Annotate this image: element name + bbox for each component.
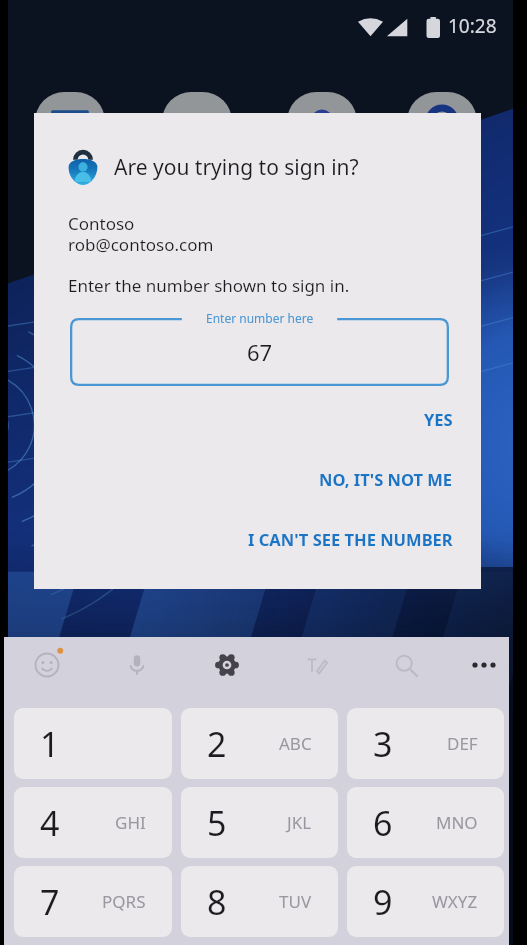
staticText: PQRS	[102, 890, 146, 913]
button[interactable]: 2	[181, 708, 338, 779]
button[interactable]: 6	[347, 787, 504, 858]
button[interactable]: I CAN'T SEE THE NUMBER	[244, 525, 457, 553]
staticText: YES	[424, 408, 453, 430]
button[interactable]: Handwriting	[295, 643, 339, 687]
staticText: 10:28	[448, 13, 497, 39]
button[interactable]: 7	[14, 866, 172, 937]
staticText: Enter the number shown to sign in.	[68, 274, 350, 297]
staticText: 8	[207, 879, 227, 925]
staticText: 1	[40, 721, 60, 767]
button[interactable]: Settings	[205, 643, 249, 687]
staticText: 7	[40, 879, 60, 925]
staticText: 67	[247, 337, 273, 367]
staticText: Enter number here	[206, 310, 314, 326]
staticText: 4	[40, 800, 60, 846]
staticText: 2	[207, 721, 227, 767]
staticText: MNO	[436, 811, 478, 834]
staticText: Are you trying to sign in?	[114, 153, 359, 182]
staticText: TUV	[279, 890, 312, 913]
staticText: WXYZ	[432, 890, 478, 913]
button[interactable]: 8	[181, 866, 338, 937]
staticText: NO, IT'S NOT ME	[319, 468, 453, 490]
staticText: I CAN'T SEE THE NUMBER	[248, 528, 453, 550]
staticText: rob@contoso.com	[68, 233, 214, 256]
staticText: 3	[373, 721, 393, 767]
button[interactable]: YES	[420, 405, 457, 433]
staticText: ABC	[279, 732, 312, 755]
staticText: JKL	[287, 811, 312, 834]
button[interactable]: 3	[347, 708, 504, 779]
staticText: GHI	[115, 811, 146, 834]
button[interactable]: NO, IT'S NOT ME	[315, 465, 457, 493]
button[interactable]: More options	[462, 643, 506, 687]
staticText: 9	[373, 879, 393, 925]
button[interactable]: Voice input	[115, 643, 159, 687]
staticText: 6	[373, 800, 393, 846]
button[interactable]: 5	[181, 787, 338, 858]
button[interactable]: 1	[14, 708, 172, 779]
staticText: 5	[207, 800, 227, 846]
staticText: Contoso	[68, 212, 135, 235]
button[interactable]: 9	[347, 866, 504, 937]
button[interactable]: Search	[384, 643, 428, 687]
button[interactable]: 4	[14, 787, 172, 858]
button[interactable]: Emoji	[25, 643, 69, 687]
staticText: DEF	[447, 732, 478, 755]
